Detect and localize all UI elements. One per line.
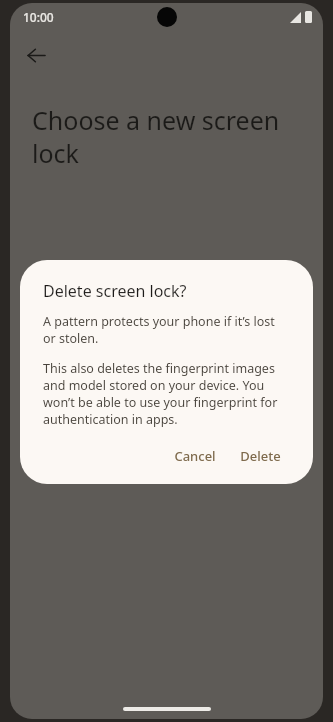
staticText: Cancel — [174, 447, 216, 465]
staticText: This also deletes the fingerprint images… — [43, 360, 290, 428]
button[interactable]: Pattern — [10, 244, 323, 296]
button[interactable]: Delete — [231, 440, 290, 472]
staticText: Password — [67, 364, 135, 384]
staticText: Delete screen lock? — [43, 280, 187, 302]
staticText: Delete — [240, 447, 281, 465]
button[interactable]: Cancel — [165, 440, 225, 472]
button[interactable]: Back — [16, 35, 56, 75]
button[interactable]: PIN — [10, 296, 323, 348]
staticText: PIN — [67, 312, 93, 332]
staticText: A pattern protects your phone if it’s lo… — [43, 313, 290, 347]
button[interactable]: Password — [10, 348, 323, 400]
staticText: 10:00 — [23, 9, 54, 25]
staticText: Choose a new screen lock — [32, 103, 299, 170]
